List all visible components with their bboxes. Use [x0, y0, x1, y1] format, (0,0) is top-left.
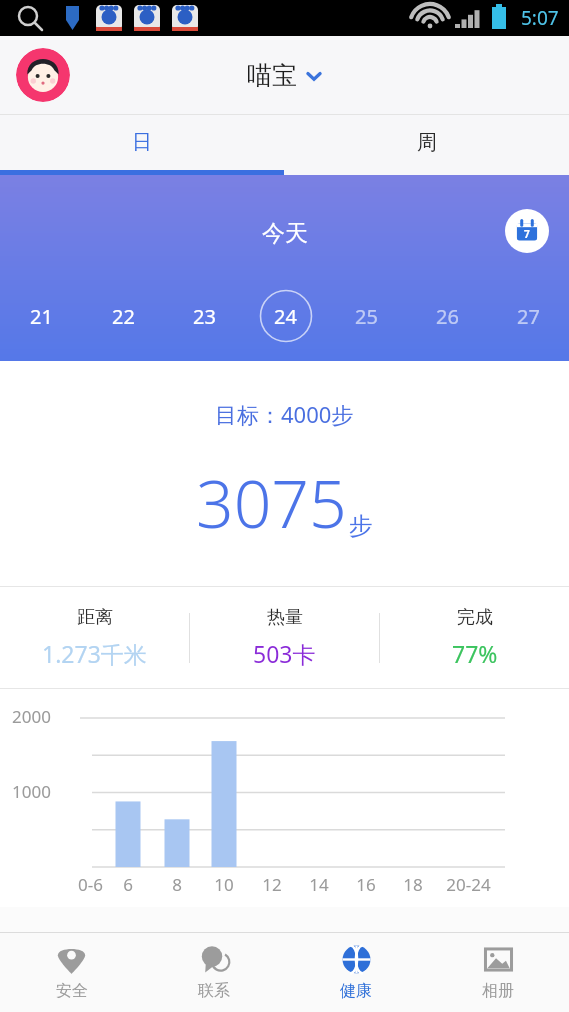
- button[interactable]: 安全: [0, 933, 143, 1012]
- staticText: 10: [214, 873, 234, 896]
- staticText: 24: [274, 303, 297, 330]
- staticText: 16: [356, 873, 376, 896]
- staticText: 18: [403, 873, 423, 896]
- staticText: 5:07: [521, 5, 559, 31]
- staticText: 503卡: [253, 638, 316, 669]
- staticText: 距离: [77, 606, 113, 629]
- staticText: 1.273千米: [42, 638, 147, 669]
- button[interactable]: 热量: [190, 587, 379, 688]
- button[interactable]: 健康: [285, 933, 427, 1012]
- staticText: 20-24: [446, 873, 491, 896]
- staticText: 25: [355, 303, 378, 330]
- button[interactable]: 24: [245, 289, 326, 343]
- staticText: 77%: [452, 638, 498, 669]
- button[interactable]: 周: [284, 115, 569, 170]
- staticText: 23: [193, 303, 216, 330]
- button[interactable]: 距离: [0, 587, 189, 688]
- button[interactable]: 26: [407, 289, 488, 343]
- staticText: 12: [262, 873, 282, 896]
- staticText: 联系: [198, 981, 230, 1001]
- button[interactable]: 21: [0, 289, 82, 343]
- staticText: 步: [349, 511, 373, 541]
- staticText: 21: [30, 303, 53, 330]
- staticText: 热量: [267, 606, 303, 629]
- staticText: 26: [436, 303, 459, 330]
- staticText: 2000: [12, 705, 51, 728]
- button[interactable]: 相册: [427, 933, 569, 1012]
- staticText: 健康: [340, 981, 372, 1001]
- staticText: 7: [524, 227, 530, 241]
- staticText: 22: [112, 303, 135, 330]
- staticText: 安全: [56, 981, 88, 1001]
- staticText: 目标：4000步: [215, 399, 354, 429]
- button[interactable]: 日: [0, 115, 284, 170]
- button[interactable]: Pick date: [505, 209, 549, 253]
- staticText: 6: [123, 873, 133, 896]
- button[interactable]: 喵宝: [247, 60, 323, 91]
- staticText: 周: [417, 130, 437, 155]
- staticText: 今天: [262, 219, 308, 248]
- button[interactable]: 23: [164, 289, 245, 343]
- staticText: 0-6: [78, 873, 103, 896]
- button[interactable]: 完成: [380, 587, 569, 688]
- button[interactable]: 25: [326, 289, 407, 343]
- button[interactable]: Profile avatar: [16, 48, 70, 102]
- staticText: 相册: [482, 981, 514, 1001]
- staticText: 日: [132, 130, 152, 155]
- staticText: 8: [172, 873, 182, 896]
- button[interactable]: 27: [488, 289, 569, 343]
- staticText: 1000: [12, 780, 51, 803]
- staticText: 3075: [196, 457, 347, 547]
- button[interactable]: 22: [82, 289, 164, 343]
- button[interactable]: 联系: [143, 933, 285, 1012]
- staticText: 27: [517, 303, 540, 330]
- staticText: 完成: [457, 606, 493, 629]
- staticText: 喵宝: [247, 60, 297, 91]
- staticText: 14: [309, 873, 329, 896]
